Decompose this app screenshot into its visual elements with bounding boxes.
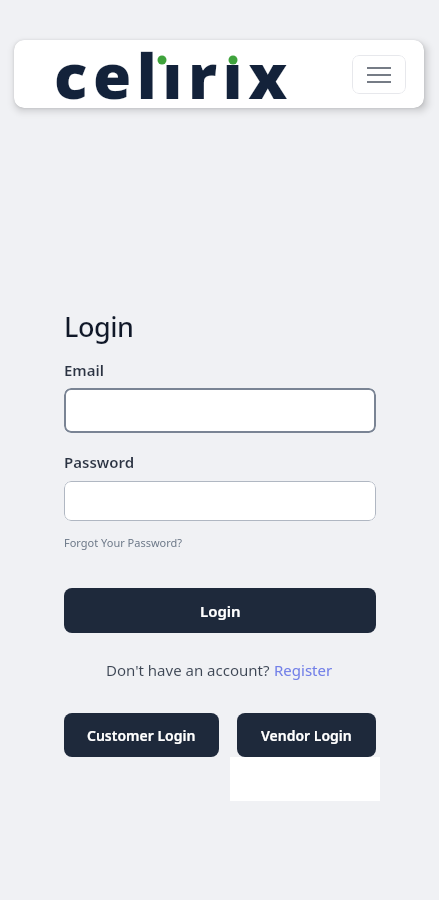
staticText: Email [64, 360, 105, 380]
staticText: Login [200, 601, 241, 621]
staticText: celırıx [54, 40, 293, 101]
staticText: Customer Login [87, 726, 196, 745]
staticText: Password [64, 452, 135, 472]
button[interactable]: Register [274, 660, 333, 680]
button[interactable]: Forgot Your Password? [64, 535, 183, 550]
button[interactable] [64, 388, 376, 433]
button[interactable]: Vendor Login [237, 713, 376, 757]
staticText: Vendor Login [261, 726, 352, 745]
button[interactable]: Login [64, 588, 376, 633]
staticText: Don't have an account? [106, 660, 274, 680]
button[interactable] [64, 481, 376, 521]
staticText: Login [64, 308, 134, 345]
button[interactable]: Customer Login [64, 713, 219, 757]
button[interactable] [352, 55, 406, 94]
